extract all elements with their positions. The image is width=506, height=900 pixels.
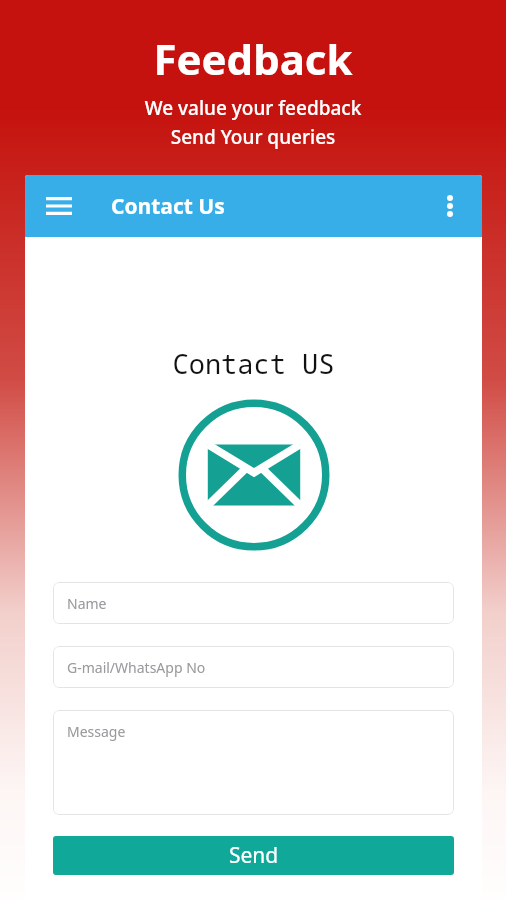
staticText: Contact US bbox=[25, 345, 482, 382]
staticText: We value your feedback bbox=[0, 95, 506, 121]
button[interactable]: Message bbox=[53, 710, 454, 815]
staticText: Send bbox=[229, 841, 279, 870]
staticText: Name bbox=[67, 594, 107, 613]
button[interactable]: Name bbox=[53, 582, 454, 624]
button[interactable]: Send bbox=[53, 836, 454, 875]
staticText: G-mail/WhatsApp No bbox=[67, 658, 206, 677]
button[interactable]: Open navigation menu bbox=[39, 186, 79, 226]
staticText: Feedback bbox=[0, 30, 506, 87]
button[interactable]: More options bbox=[430, 186, 470, 226]
staticText: Contact Us bbox=[111, 192, 225, 221]
button[interactable]: G-mail/WhatsApp No bbox=[53, 646, 454, 688]
staticText: Send Your queries bbox=[0, 124, 506, 150]
staticText: Message bbox=[67, 722, 126, 741]
